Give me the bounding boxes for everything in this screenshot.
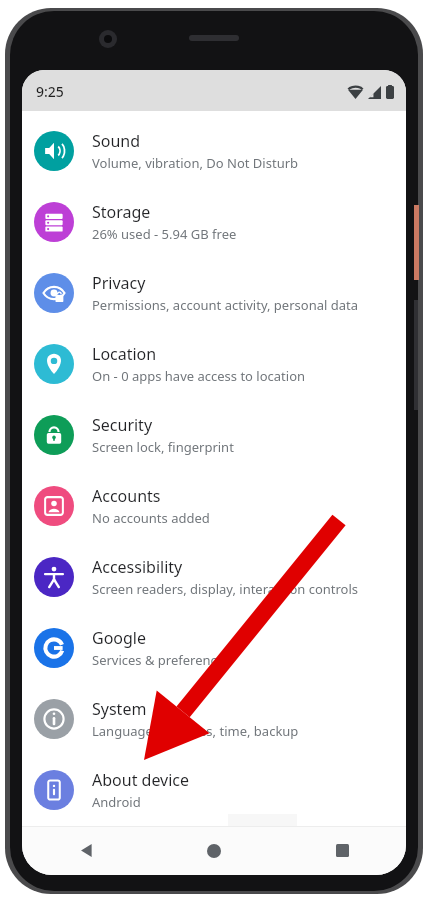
staticText: Storage	[92, 201, 151, 223]
staticText: Volume, vibration, Do Not Disturb	[92, 154, 299, 172]
staticText: Services & preferences	[92, 651, 231, 669]
button[interactable]: System	[22, 683, 406, 754]
staticText: Accessibility	[92, 556, 183, 578]
button[interactable]: Location	[22, 328, 406, 399]
staticText: About device	[92, 769, 190, 791]
staticText: Privacy	[92, 272, 146, 294]
button[interactable]: Accessibility	[22, 541, 406, 612]
button[interactable]: Sound	[22, 115, 406, 186]
button[interactable]: About device	[22, 754, 406, 825]
staticText: Screen lock, fingerprint	[92, 438, 234, 456]
button[interactable]: Recent apps	[278, 826, 406, 875]
staticText: 26% used - 5.94 GB free	[92, 225, 237, 243]
staticText: System	[92, 698, 147, 720]
button[interactable]: Storage	[22, 186, 406, 257]
staticText: On - 0 apps have access to location	[92, 367, 306, 385]
staticText: Security	[92, 414, 153, 436]
button[interactable]: Accounts	[22, 470, 406, 541]
button[interactable]: Google	[22, 612, 406, 683]
staticText: No accounts added	[92, 509, 210, 527]
staticText: Language, gestures, time, backup	[92, 722, 299, 740]
staticText: Screen readers, display, interaction con…	[92, 580, 359, 598]
staticText: Location	[92, 343, 157, 365]
staticText: 9:25	[36, 82, 64, 101]
staticText: Android	[92, 793, 141, 811]
staticText: Accounts	[92, 485, 161, 507]
button[interactable]: Privacy	[22, 257, 406, 328]
staticText: Google	[92, 627, 147, 649]
staticText: Sound	[92, 130, 141, 152]
button[interactable]: Home	[150, 826, 278, 875]
button[interactable]: Security	[22, 399, 406, 470]
button[interactable]: Back	[22, 826, 150, 875]
staticText: Permissions, account activity, personal …	[92, 296, 358, 314]
